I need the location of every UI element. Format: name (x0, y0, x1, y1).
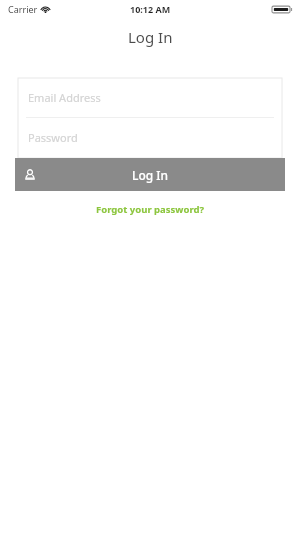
staticText: Password (28, 130, 78, 145)
button[interactable]: Password (18, 118, 282, 157)
staticText: Email Address (28, 90, 101, 105)
staticText: Log In (128, 27, 173, 47)
button[interactable]: Account (15, 158, 285, 191)
staticText: Log In (132, 167, 169, 183)
other: Account (23, 168, 37, 182)
button[interactable]: Email Address (18, 78, 282, 117)
staticText: 10:12 AM (130, 3, 171, 15)
button[interactable]: Forgot your password? (90, 201, 210, 218)
staticText: Forgot your password? (96, 203, 204, 216)
staticText: Carrier (8, 3, 38, 15)
